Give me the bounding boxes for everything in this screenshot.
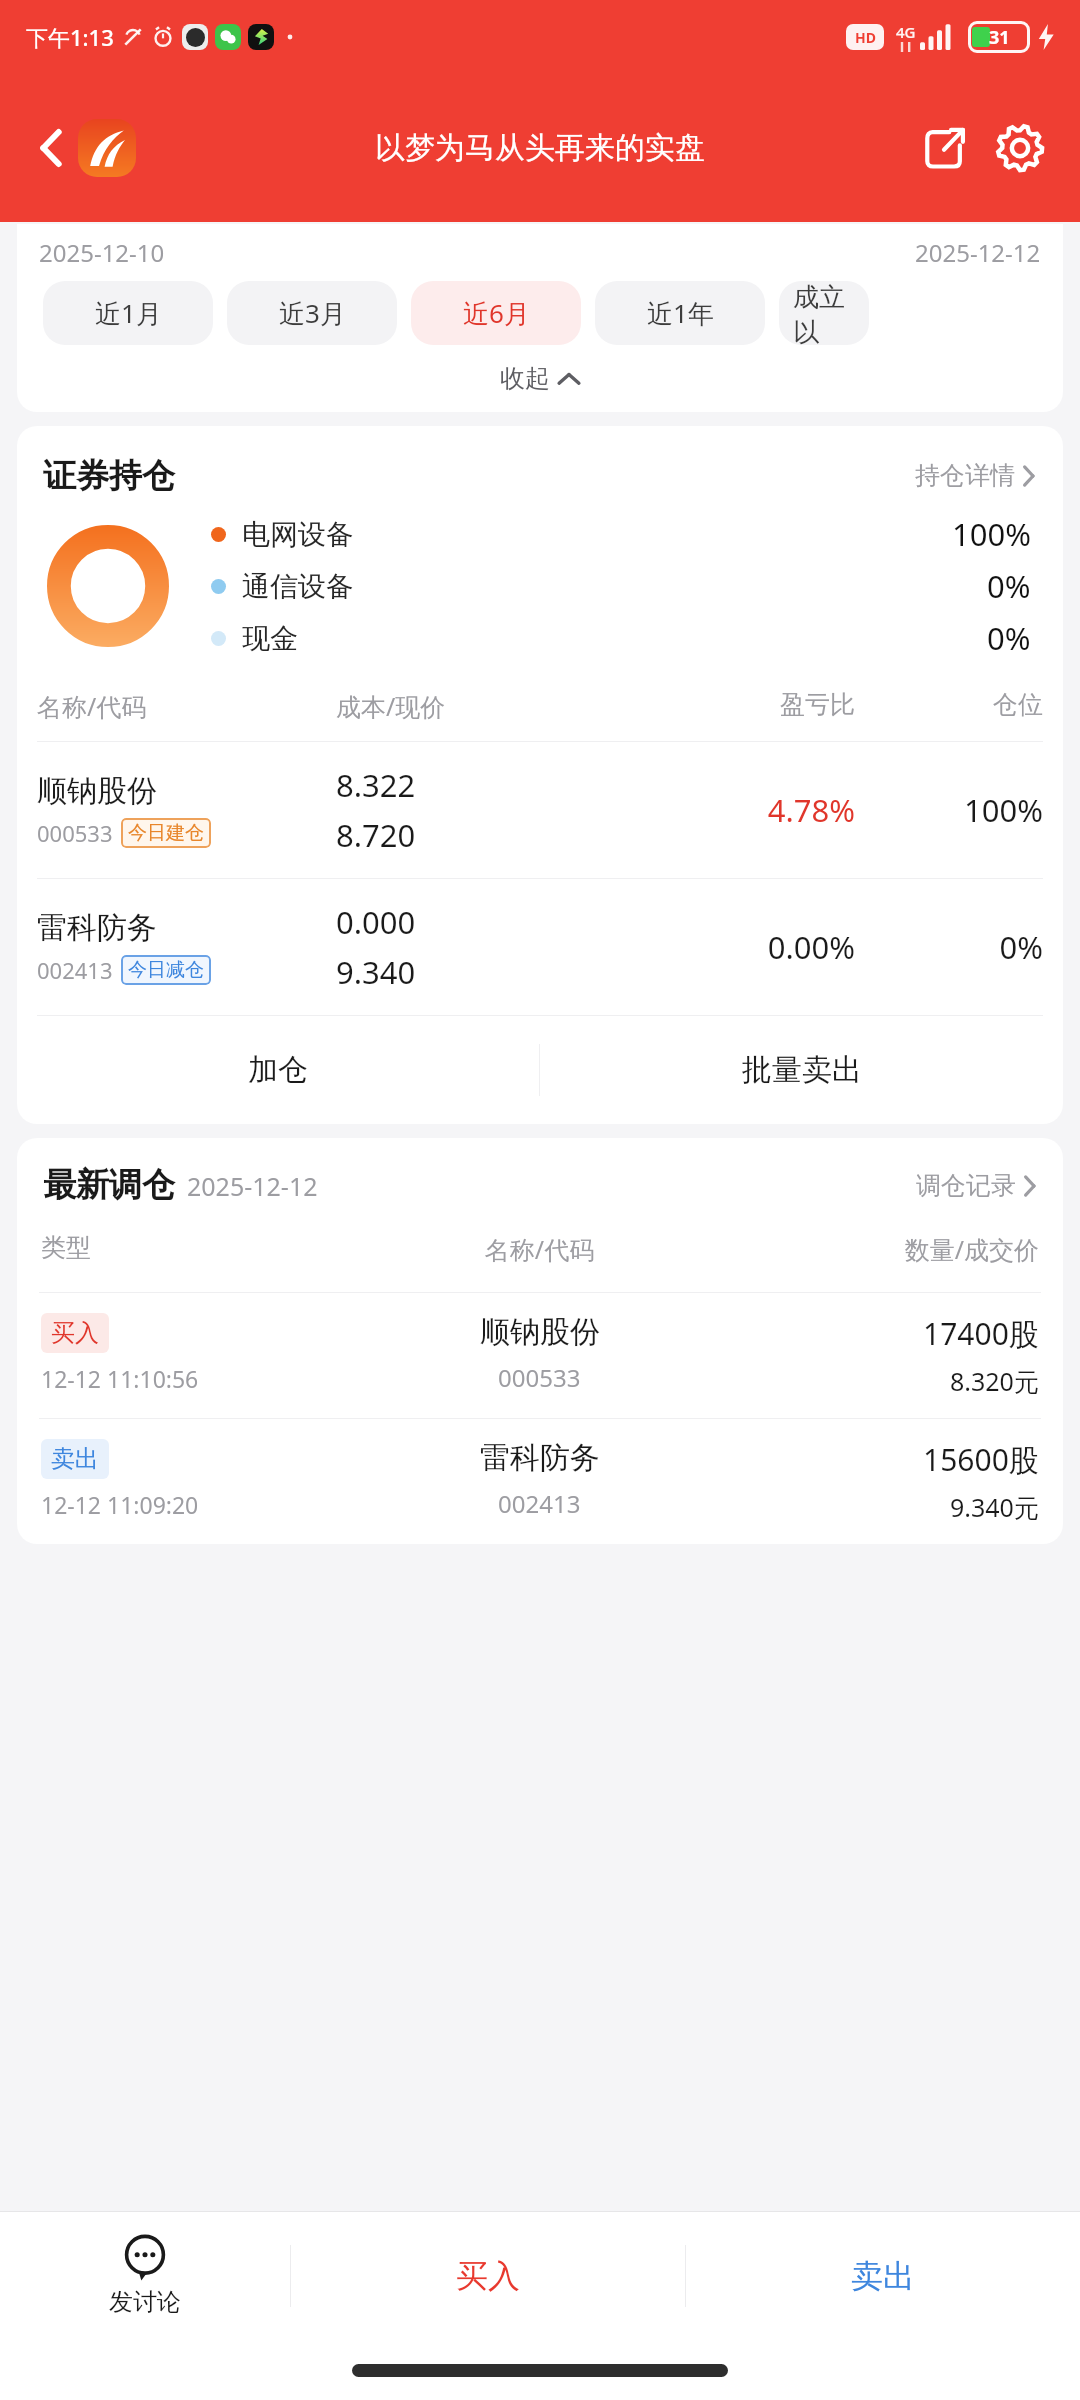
staticText: 下午1:13: [26, 22, 114, 52]
button[interactable]: 顺钠股份: [17, 742, 1063, 878]
button[interactable]: 收起: [17, 345, 1063, 412]
staticText: 12-12 11:09:20: [41, 1489, 199, 1520]
staticText: 买入: [51, 1318, 99, 1348]
staticText: 仓位: [855, 689, 1043, 720]
staticText: 今日建仓: [128, 821, 204, 845]
staticText: 名称/代码: [37, 689, 336, 723]
button[interactable]: 批量卖出: [540, 1016, 1063, 1124]
button[interactable]: 近3月: [227, 281, 397, 345]
button[interactable]: 成立以: [779, 281, 869, 345]
button[interactable]: Share: [910, 114, 978, 182]
staticText: 近1月: [95, 295, 162, 331]
staticText: 2025-12-12: [187, 1169, 318, 1203]
button[interactable]: 发讨论: [0, 2212, 290, 2340]
staticText: 000533: [37, 818, 113, 848]
staticText: 顺钠股份: [480, 1313, 600, 1351]
staticText: 证券持仓: [43, 455, 175, 497]
staticText: 雷科防务: [37, 909, 157, 947]
staticText: 0%: [987, 617, 1031, 659]
staticText: 收起: [500, 363, 550, 394]
staticText: 0%: [987, 565, 1031, 607]
staticText: 持仓详情: [915, 460, 1015, 491]
staticText: 雷科防务: [480, 1439, 600, 1477]
staticText: 4.78%: [612, 789, 855, 831]
button[interactable]: Settings: [986, 114, 1054, 182]
button[interactable]: 近1月: [43, 281, 213, 345]
staticText: 2025-12-10: [39, 236, 165, 269]
button[interactable]: 买入: [291, 2212, 685, 2340]
staticText: 002413: [37, 955, 113, 985]
staticText: 0%: [855, 926, 1043, 968]
staticText: HD: [855, 28, 876, 47]
button[interactable]: 持仓详情: [909, 454, 1041, 497]
staticText: 发讨论: [109, 2287, 181, 2317]
staticText: 9.340元: [950, 1490, 1039, 1524]
staticText: 100%: [855, 789, 1043, 831]
staticText: 000533: [498, 1361, 581, 1394]
staticText: 盈亏比: [612, 689, 855, 720]
staticText: 顺钠股份: [37, 772, 157, 810]
staticText: 电网设备: [242, 517, 354, 552]
staticText: 9.340: [336, 951, 416, 993]
staticText: 近1年: [647, 295, 714, 331]
staticText: 数量/成交价: [706, 1232, 1039, 1266]
staticText: 8.320元: [950, 1364, 1039, 1398]
staticText: 调仓记录: [916, 1170, 1016, 1201]
button[interactable]: 卖出: [17, 1419, 1063, 1544]
staticText: 近3月: [279, 295, 346, 331]
staticText: 31: [989, 25, 1010, 50]
staticText: 8.720: [336, 814, 416, 856]
staticText: 买入: [456, 2256, 520, 2296]
button[interactable]: 买入: [17, 1293, 1063, 1418]
button[interactable]: App logo: [78, 119, 136, 177]
staticText: 通信设备: [242, 569, 354, 604]
button[interactable]: 近6月: [411, 281, 581, 345]
staticText: 类型: [41, 1232, 373, 1263]
staticText: 以梦为马从头再来的实盘: [375, 129, 705, 167]
staticText: 近6月: [463, 295, 530, 331]
staticText: 2025-12-12: [915, 236, 1041, 269]
button[interactable]: 调仓记录: [911, 1165, 1041, 1206]
button[interactable]: Back: [18, 115, 84, 181]
staticText: 加仓: [248, 1051, 308, 1089]
staticText: 卖出: [51, 1444, 99, 1474]
staticText: 17400股: [923, 1313, 1039, 1354]
staticText: 名称/代码: [373, 1232, 706, 1266]
button[interactable]: 近1年: [595, 281, 765, 345]
staticText: 0.00%: [612, 926, 855, 968]
staticText: 批量卖出: [742, 1051, 862, 1089]
staticText: 今日减仓: [128, 958, 204, 982]
button[interactable]: 卖出: [686, 2212, 1080, 2340]
staticText: 0.000: [336, 901, 416, 943]
staticText: 卖出: [851, 2256, 915, 2296]
button[interactable]: 雷科防务: [17, 879, 1063, 1015]
staticText: 成立以: [793, 281, 869, 345]
staticText: 002413: [498, 1487, 581, 1520]
staticText: 现金: [242, 621, 298, 656]
staticText: 8.322: [336, 764, 416, 806]
staticText: 12-12 11:10:56: [41, 1363, 199, 1394]
staticText: 15600股: [923, 1439, 1039, 1480]
staticText: 成本/现价: [336, 689, 612, 723]
staticText: 100%: [952, 513, 1031, 555]
staticText: 最新调仓: [43, 1164, 175, 1206]
staticText: 4G: [896, 22, 916, 42]
button[interactable]: 加仓: [17, 1016, 539, 1124]
